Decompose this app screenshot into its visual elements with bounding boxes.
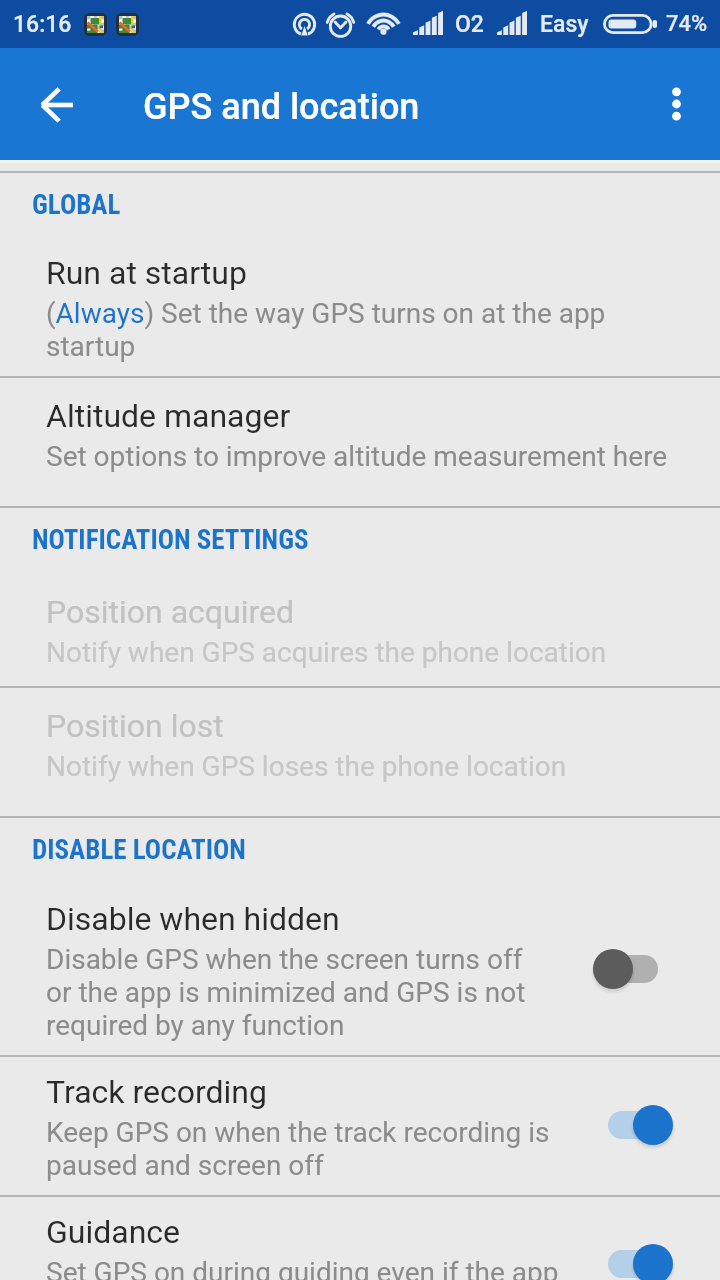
staticText: Notify when GPS acquires the phone locat… bbox=[46, 636, 607, 669]
staticText: Disable GPS when the screen turns off or… bbox=[46, 943, 546, 1042]
button[interactable]: Navigate up bbox=[0, 48, 112, 160]
staticText: Disable when hidden bbox=[46, 900, 340, 938]
button[interactable]: Guidance bbox=[0, 1197, 720, 1280]
staticText: Track recording bbox=[46, 1073, 267, 1111]
staticText: Notify when GPS loses the phone location bbox=[46, 750, 567, 783]
staticText: O2 bbox=[455, 11, 484, 38]
staticText: Easy bbox=[540, 11, 589, 38]
staticText: Position lost bbox=[46, 707, 224, 745]
staticText: Position acquired bbox=[46, 593, 294, 631]
staticText: Altitude manager bbox=[46, 397, 291, 435]
button[interactable]: On bbox=[593, 1097, 673, 1153]
staticText: NOTIFICATION SETTINGS bbox=[32, 524, 309, 556]
staticText: GLOBAL bbox=[32, 189, 121, 221]
staticText: 16:16 bbox=[13, 11, 72, 38]
button[interactable]: Position lost bbox=[0, 688, 720, 816]
button[interactable]: Run at startup bbox=[0, 239, 720, 376]
button[interactable]: Altitude manager bbox=[0, 378, 720, 506]
staticText: GPS and location bbox=[143, 86, 420, 128]
button[interactable]: Disable when hidden bbox=[0, 884, 720, 1055]
button[interactable]: On bbox=[593, 1236, 673, 1280]
staticText: DISABLE LOCATION bbox=[32, 834, 246, 866]
staticText: Guidance bbox=[46, 1213, 181, 1251]
button[interactable]: Position acquired bbox=[0, 574, 720, 686]
staticText: Keep GPS on when the track recording is … bbox=[46, 1116, 556, 1182]
button[interactable]: Track recording bbox=[0, 1057, 720, 1195]
button[interactable]: More options bbox=[632, 48, 720, 160]
staticText: Set options to improve altitude measurem… bbox=[46, 440, 668, 473]
staticText: Set GPS on during guiding even if the ap… bbox=[46, 1256, 581, 1280]
button[interactable]: Off bbox=[593, 941, 673, 997]
staticText: (Always) Set the way GPS turns on at the… bbox=[46, 297, 621, 363]
staticText: 74% bbox=[666, 11, 708, 37]
staticText: Run at startup bbox=[46, 254, 247, 292]
